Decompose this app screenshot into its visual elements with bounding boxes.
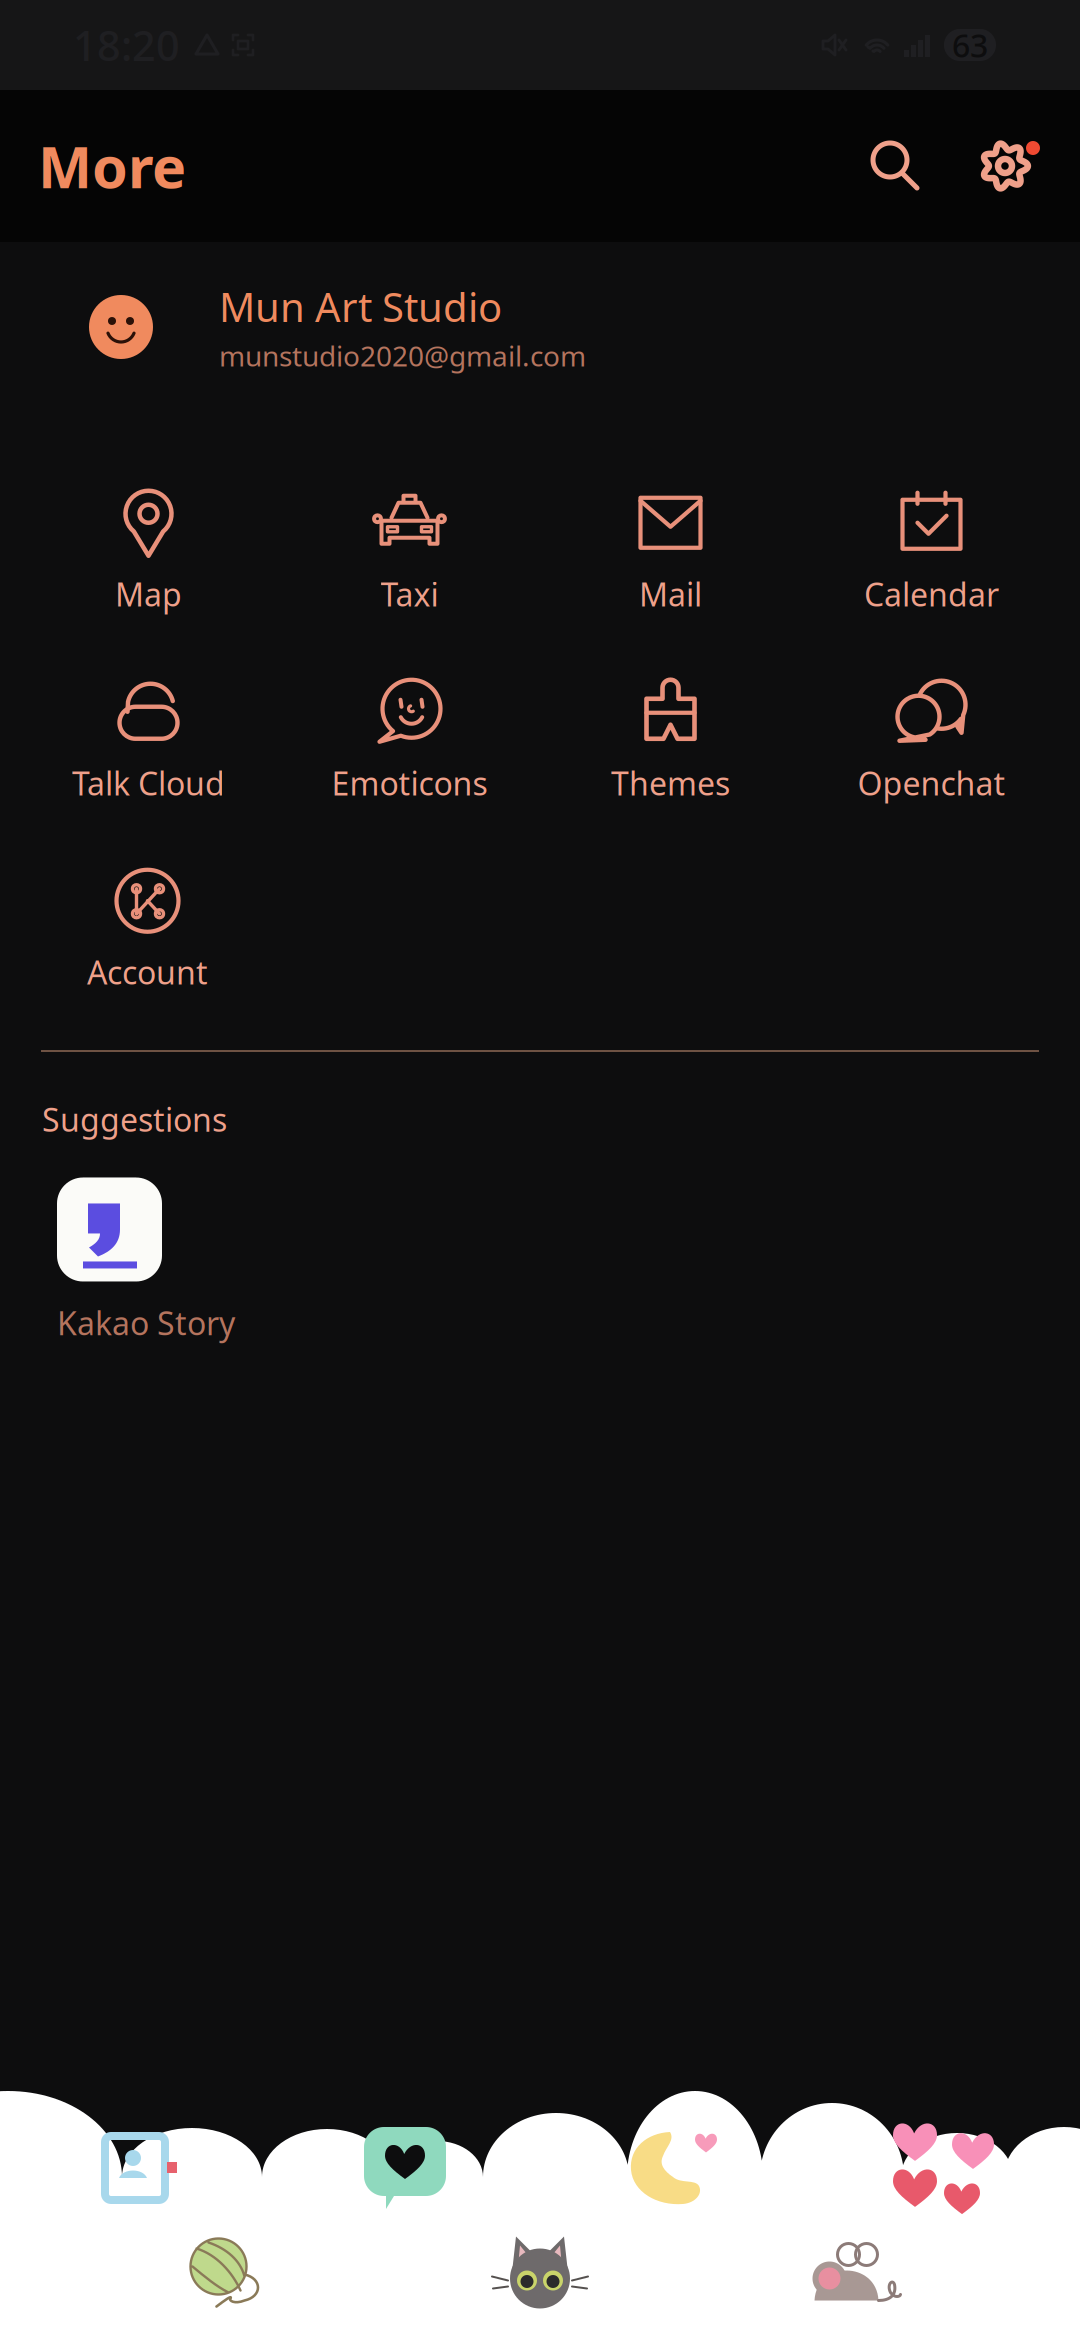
- button[interactable]: Talk Cloud: [18, 675, 279, 804]
- button[interactable]: Search: [850, 121, 940, 211]
- staticText: Themes: [611, 762, 730, 804]
- staticText: Openchat: [857, 762, 1005, 804]
- button[interactable]: Friends: [0, 2113, 270, 2223]
- staticText: Account: [87, 951, 208, 993]
- staticText: Map: [115, 573, 182, 615]
- staticText: 18:20: [73, 18, 180, 72]
- button[interactable]: Themes: [540, 675, 801, 804]
- staticText: Suggestions: [42, 1098, 227, 1140]
- staticText: Taxi: [380, 573, 438, 615]
- staticText: Mail: [639, 573, 702, 615]
- button[interactable]: Map: [18, 486, 279, 615]
- button[interactable]: Home: [455, 2205, 625, 2340]
- button[interactable]: Account: [17, 864, 278, 993]
- button[interactable]: Calendar: [801, 486, 1062, 615]
- button[interactable]: Open Chat: [540, 2113, 810, 2223]
- staticText: Calendar: [864, 573, 999, 615]
- staticText: 63: [952, 24, 988, 66]
- button[interactable]: Mun Art Studio: [0, 242, 1080, 412]
- button[interactable]: Kakao Story: [57, 1177, 357, 1344]
- button[interactable]: Shopping: [810, 2113, 1080, 2223]
- staticText: Mun Art Studio: [219, 280, 502, 333]
- staticText: munstudio2020@gmail.com: [219, 337, 586, 374]
- staticText: Talk Cloud: [72, 762, 225, 804]
- button[interactable]: Mail: [540, 486, 801, 615]
- staticText: Emoticons: [331, 762, 487, 804]
- button[interactable]: Back: [142, 2205, 312, 2340]
- button[interactable]: Openchat: [801, 675, 1062, 804]
- button[interactable]: Emoticons: [279, 675, 540, 804]
- button[interactable]: Chats: [270, 2113, 540, 2223]
- button[interactable]: Recents: [767, 2205, 937, 2340]
- button[interactable]: Settings: [960, 121, 1050, 211]
- button[interactable]: Taxi: [279, 486, 540, 615]
- staticText: More: [38, 128, 186, 204]
- staticText: Kakao Story: [57, 1301, 235, 1344]
